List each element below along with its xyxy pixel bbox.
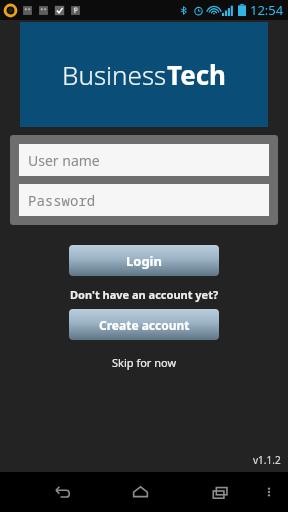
button[interactable]: Skip for now — [0, 353, 288, 372]
button[interactable]: Login — [69, 245, 219, 276]
button[interactable]: Home — [120, 472, 160, 512]
staticText: User name — [28, 151, 100, 170]
button[interactable]: Create account — [69, 309, 219, 340]
button[interactable]: Back — [40, 472, 80, 512]
staticText: Don't have an account yet? — [70, 287, 219, 302]
button[interactable]: Password — [19, 184, 269, 216]
staticText: Password — [28, 191, 96, 210]
button[interactable]: Recent apps — [200, 472, 240, 512]
staticText: Skip for now — [112, 355, 177, 370]
staticText: Business — [62, 57, 167, 92]
staticText: Login — [126, 252, 162, 270]
staticText: Tech — [167, 57, 227, 92]
button[interactable]: More options — [254, 477, 284, 507]
staticText: 12:54 — [250, 1, 284, 19]
button[interactable]: User name — [19, 144, 269, 176]
staticText: v1.1.2 — [253, 453, 281, 467]
staticText: Create account — [99, 317, 190, 333]
